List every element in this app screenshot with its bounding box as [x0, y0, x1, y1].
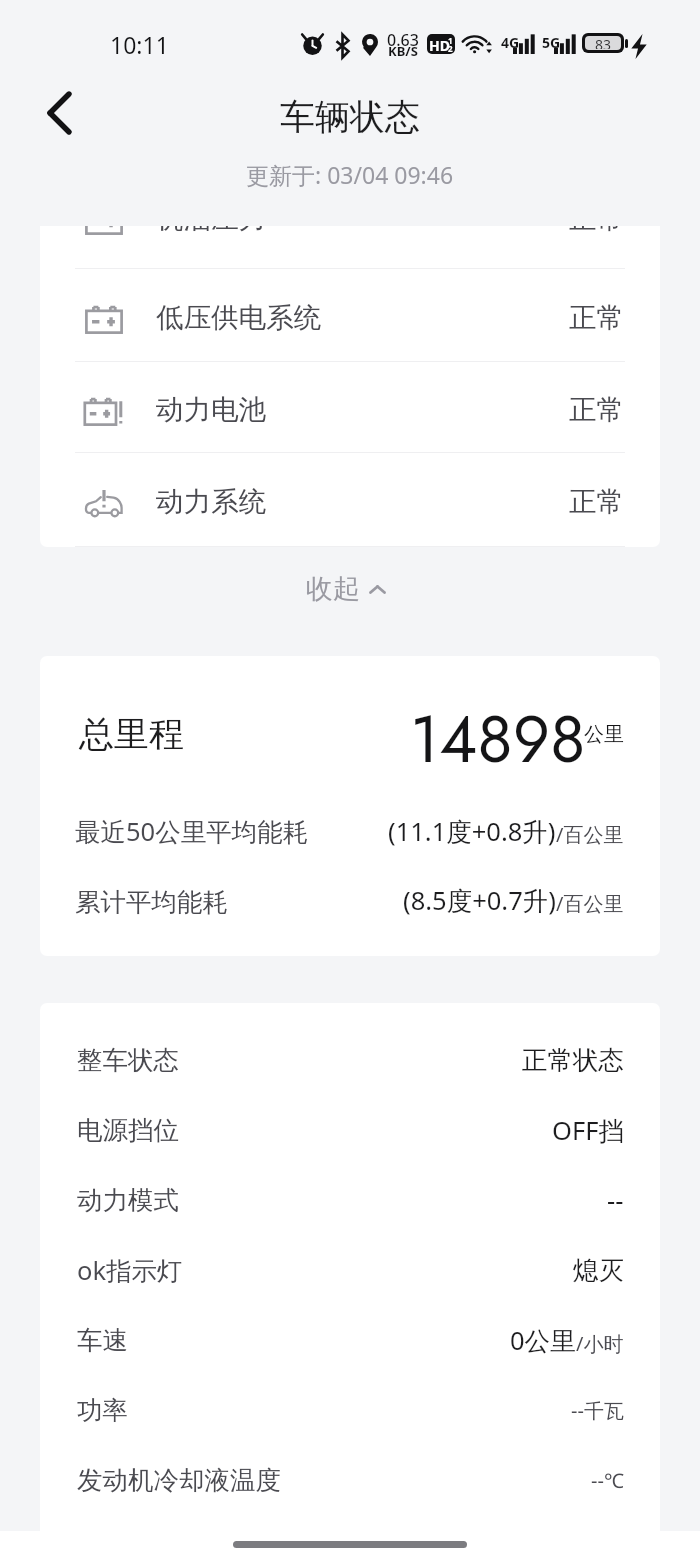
- staticText: 83: [595, 36, 612, 49]
- staticText: 动力电池: [156, 393, 266, 428]
- button[interactable]: 发动机冷却液温度: [40, 1445, 660, 1515]
- staticText: /小时: [576, 1330, 624, 1357]
- staticText: /百公里: [556, 821, 624, 848]
- button[interactable]: 整车状态: [40, 1025, 660, 1095]
- staticText: 正常: [569, 301, 624, 336]
- staticText: 动力模式: [77, 1184, 179, 1216]
- staticText: 机油压力: [156, 226, 266, 237]
- staticText: (8.5度+0.7升): [403, 883, 556, 918]
- staticText: 正常: [569, 485, 624, 520]
- staticText: 最近50公里平均能耗: [75, 814, 309, 849]
- staticText: 熄灭: [573, 1254, 624, 1286]
- button[interactable]: 低压供电系统: [40, 272, 660, 364]
- staticText: 0公里: [510, 1323, 576, 1358]
- staticText: 整车状态: [77, 1044, 179, 1076]
- button[interactable]: 动力电池: [40, 365, 660, 455]
- button[interactable]: 机油压力: [40, 226, 660, 265]
- staticText: --℃: [591, 1467, 624, 1494]
- staticText: 1: [448, 35, 453, 46]
- button[interactable]: 收起: [280, 557, 420, 621]
- staticText: HD: [429, 36, 450, 54]
- staticText: 累计平均能耗: [75, 886, 228, 918]
- staticText: 5G: [542, 33, 561, 52]
- staticText: 10:11: [110, 29, 169, 60]
- button[interactable]: ok指示灯: [40, 1235, 660, 1305]
- staticText: /百公里: [556, 890, 624, 917]
- button[interactable]: 功率: [40, 1375, 660, 1445]
- staticText: OFF挡: [552, 1113, 624, 1148]
- button[interactable]: 动力模式: [40, 1165, 660, 1235]
- staticText: (11.1度+0.8升): [388, 814, 556, 849]
- staticText: 更新于: 03/04 09:46: [246, 159, 454, 190]
- button[interactable]: 电源挡位: [40, 1095, 660, 1165]
- button[interactable]: Back: [30, 88, 80, 138]
- staticText: 车速: [77, 1324, 128, 1356]
- staticText: 14898: [410, 692, 586, 786]
- staticText: 总里程: [79, 712, 184, 756]
- staticText: 2: [448, 43, 453, 54]
- staticText: 正常: [569, 226, 624, 237]
- staticText: 动力系统: [156, 485, 266, 520]
- staticText: 4G: [501, 33, 520, 52]
- staticText: KB/S: [388, 42, 418, 60]
- staticText: 车辆状态: [280, 95, 420, 139]
- staticText: 电源挡位: [77, 1114, 179, 1146]
- staticText: 功率: [77, 1394, 128, 1426]
- staticText: 发动机冷却液温度: [77, 1464, 281, 1496]
- button[interactable]: 车速: [40, 1305, 660, 1375]
- staticText: 低压供电系统: [156, 301, 321, 336]
- staticText: 正常状态: [522, 1044, 624, 1076]
- button[interactable]: 动力系统: [40, 456, 660, 547]
- staticText: --千瓦: [571, 1397, 624, 1424]
- staticText: --: [607, 1183, 624, 1218]
- staticText: ok指示灯: [77, 1253, 183, 1288]
- staticText: 公里: [584, 722, 624, 747]
- staticText: 收起: [306, 572, 360, 606]
- staticText: 正常: [569, 393, 624, 428]
- staticText: 0.63: [387, 29, 419, 51]
